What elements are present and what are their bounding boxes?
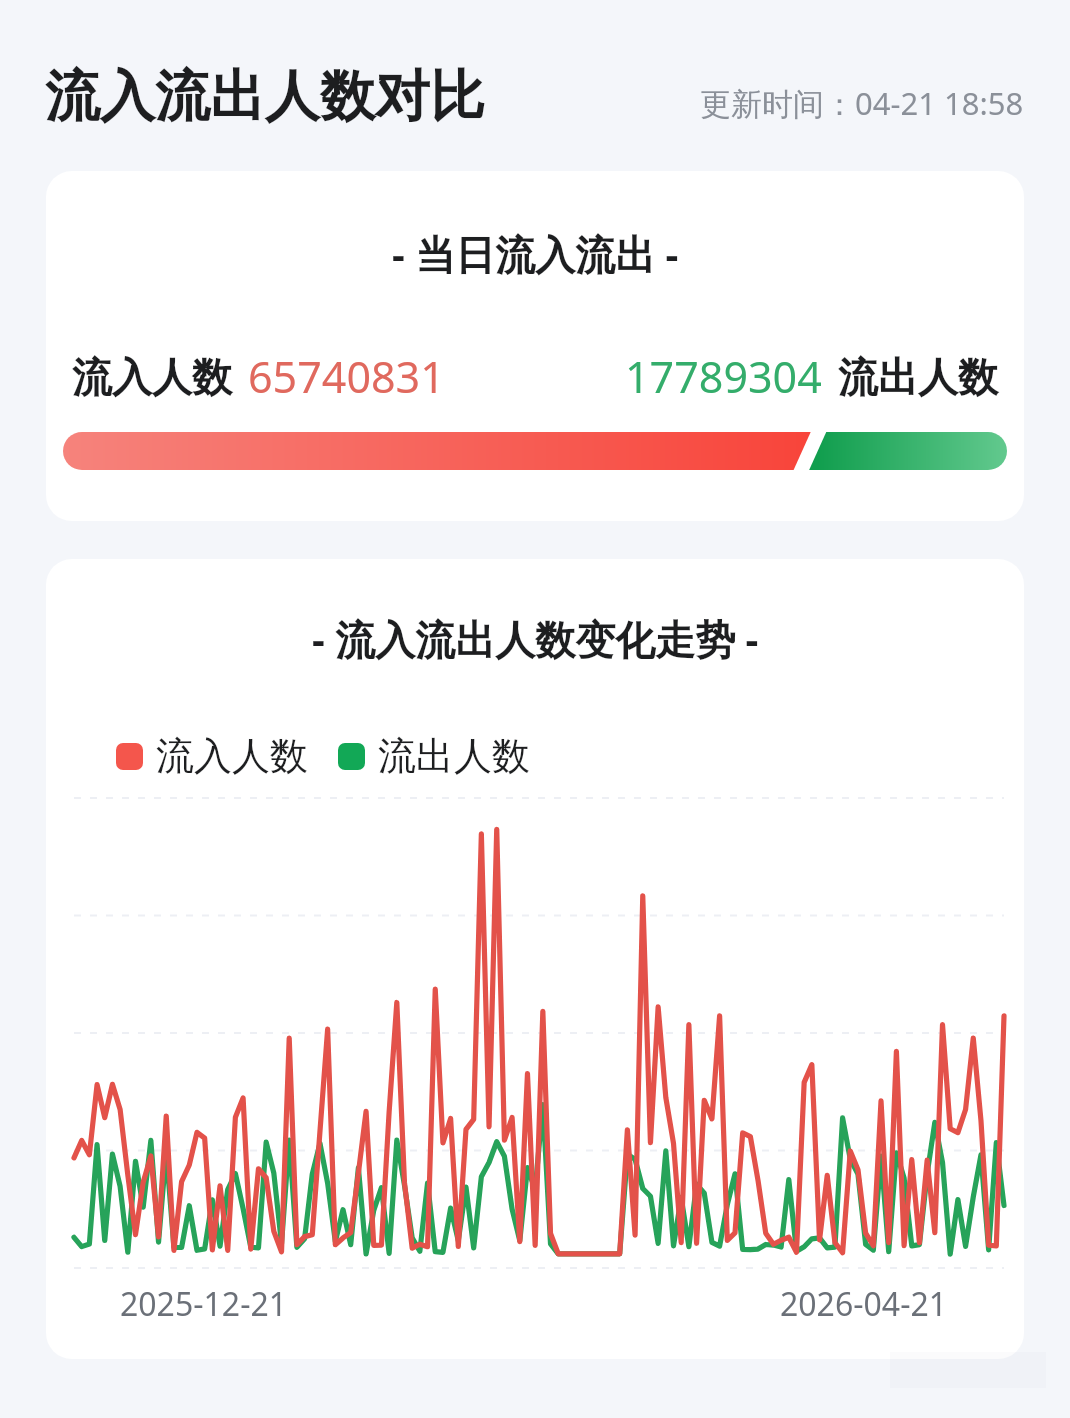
staticText: 更新时间：04-21 18:58 (700, 82, 1024, 124)
staticText: 流入流出人数对比 (45, 62, 485, 131)
staticText: - 当日流入流出 - (392, 226, 679, 281)
staticText: - 流入流出人数变化走势 - (312, 611, 759, 666)
other: Watermark (0, 0, 1070, 1418)
staticText: 2025-12-21 (120, 1282, 288, 1326)
button[interactable]: - 当日流入流出 - (46, 171, 1024, 521)
staticText: 流出人数 (838, 352, 998, 402)
staticText: 流入人数 (72, 352, 232, 402)
staticText: 流出人数 (378, 732, 530, 780)
staticText: 65740831 (248, 347, 445, 406)
staticText: 17789304 (625, 347, 822, 406)
staticText: 2026-04-21 (780, 1282, 948, 1326)
button[interactable]: - 流入流出人数变化走势 - (46, 559, 1024, 1359)
staticText: 流入人数 (156, 732, 308, 780)
